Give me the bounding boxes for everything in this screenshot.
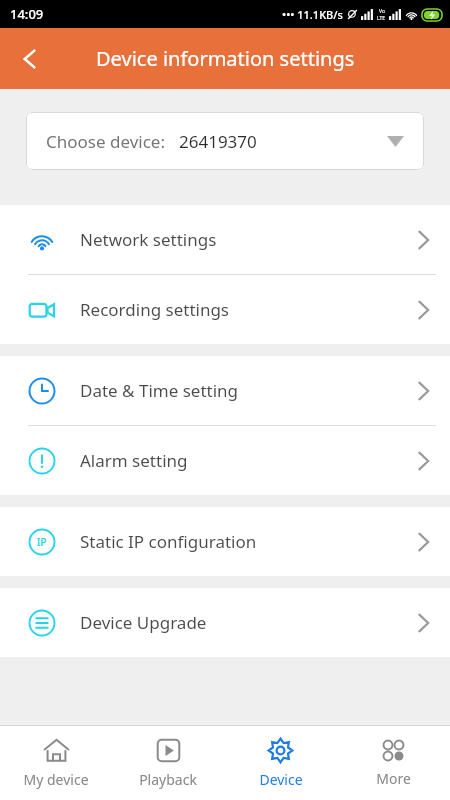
staticText: LTE	[377, 15, 386, 22]
button[interactable]: Network settings	[0, 205, 450, 274]
staticText: Network settings	[80, 228, 217, 251]
button[interactable]: Playback	[112, 726, 224, 800]
staticText: 26419370	[179, 130, 257, 153]
staticText: Static IP configuration	[80, 530, 257, 553]
staticText: More	[376, 769, 411, 788]
button[interactable]: Choose device:	[26, 112, 424, 170]
button[interactable]: My device	[0, 726, 112, 800]
staticText: Vo	[379, 8, 385, 15]
staticText: Choose device:	[46, 130, 165, 153]
staticText: ••• 11.1KB/s	[282, 7, 343, 22]
staticText: Playback	[139, 770, 197, 789]
staticText: IP	[37, 535, 47, 549]
staticText: Alarm setting	[80, 449, 188, 472]
staticText: Device information settings	[96, 45, 355, 72]
button[interactable]: Date & Time setting	[0, 356, 450, 425]
button[interactable]: Back	[4, 33, 56, 85]
staticText: Device	[259, 770, 303, 789]
button[interactable]: More	[337, 726, 450, 800]
staticText: Date & Time setting	[80, 379, 239, 402]
button[interactable]: Device	[224, 726, 337, 800]
button[interactable]: Alarm setting	[0, 426, 450, 495]
button[interactable]: Device Upgrade	[0, 588, 450, 657]
button[interactable]: IP	[0, 507, 450, 576]
staticText: Device Upgrade	[80, 611, 207, 634]
staticText: Recording settings	[80, 298, 230, 321]
button[interactable]: Recording settings	[0, 275, 450, 344]
staticText: My device	[23, 770, 89, 789]
staticText: 14:09	[10, 5, 44, 23]
